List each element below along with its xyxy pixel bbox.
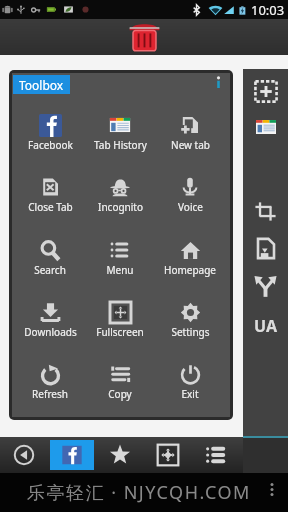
button[interactable]: Bookmarks <box>96 437 144 473</box>
staticText: Settings <box>171 325 210 339</box>
staticText: Downloads <box>24 325 77 339</box>
staticText: Facebook <box>28 138 73 152</box>
button[interactable]: New tab <box>155 113 225 163</box>
button[interactable]: Crop <box>243 198 288 225</box>
button[interactable]: Back <box>0 437 48 473</box>
button[interactable]: Search <box>15 238 85 288</box>
button[interactable]: Incognito <box>85 175 155 225</box>
staticText: Incognito <box>98 200 143 214</box>
button[interactable]: Add bookmark <box>243 76 288 107</box>
button[interactable]: More options <box>264 481 280 497</box>
staticText: Voice <box>178 200 203 214</box>
button[interactable]: Settings <box>155 300 225 350</box>
button[interactable]: Copy <box>85 362 155 412</box>
button[interactable]: Tab history <box>243 113 288 138</box>
button[interactable]: Share <box>243 271 288 302</box>
button[interactable]: Voice <box>155 175 225 225</box>
button[interactable]: Homepage <box>155 238 225 288</box>
button[interactable]: Close Tab <box>15 175 85 225</box>
button[interactable]: Menu <box>192 437 240 473</box>
staticText: Exit <box>181 387 199 401</box>
staticText: Close Tab <box>28 200 73 214</box>
button[interactable]: Fullscreen <box>144 437 192 473</box>
staticText: 乐亭轻汇 · NJYCQH.COM <box>27 480 251 505</box>
button[interactable]: Exit <box>155 362 225 412</box>
button[interactable]: Tab History <box>85 113 155 163</box>
staticText: UA <box>254 315 278 335</box>
button[interactable]: Delete <box>126 19 162 55</box>
button[interactable]: Facebook <box>15 113 85 163</box>
staticText: Tab History <box>94 138 147 152</box>
button[interactable]: Info <box>209 73 227 91</box>
button[interactable]: Fullscreen <box>85 300 155 350</box>
staticText: Copy <box>108 387 132 401</box>
staticText: Refresh <box>32 387 68 401</box>
staticText: Search <box>34 263 66 277</box>
staticText: New tab <box>171 138 210 152</box>
button[interactable]: Save page <box>243 233 288 264</box>
button[interactable]: Refresh <box>15 362 85 412</box>
staticText: Menu <box>106 263 134 277</box>
button[interactable]: Downloads <box>15 300 85 350</box>
button[interactable]: Facebook <box>48 437 96 473</box>
staticText: 10:03 <box>251 1 285 19</box>
button[interactable]: Menu <box>85 238 155 288</box>
staticText: Homepage <box>164 263 216 277</box>
button[interactable]: Toolbox <box>13 75 70 94</box>
staticText: Fullscreen <box>96 325 144 339</box>
button[interactable]: UA <box>243 315 288 335</box>
staticText: Toolbox <box>19 77 64 93</box>
